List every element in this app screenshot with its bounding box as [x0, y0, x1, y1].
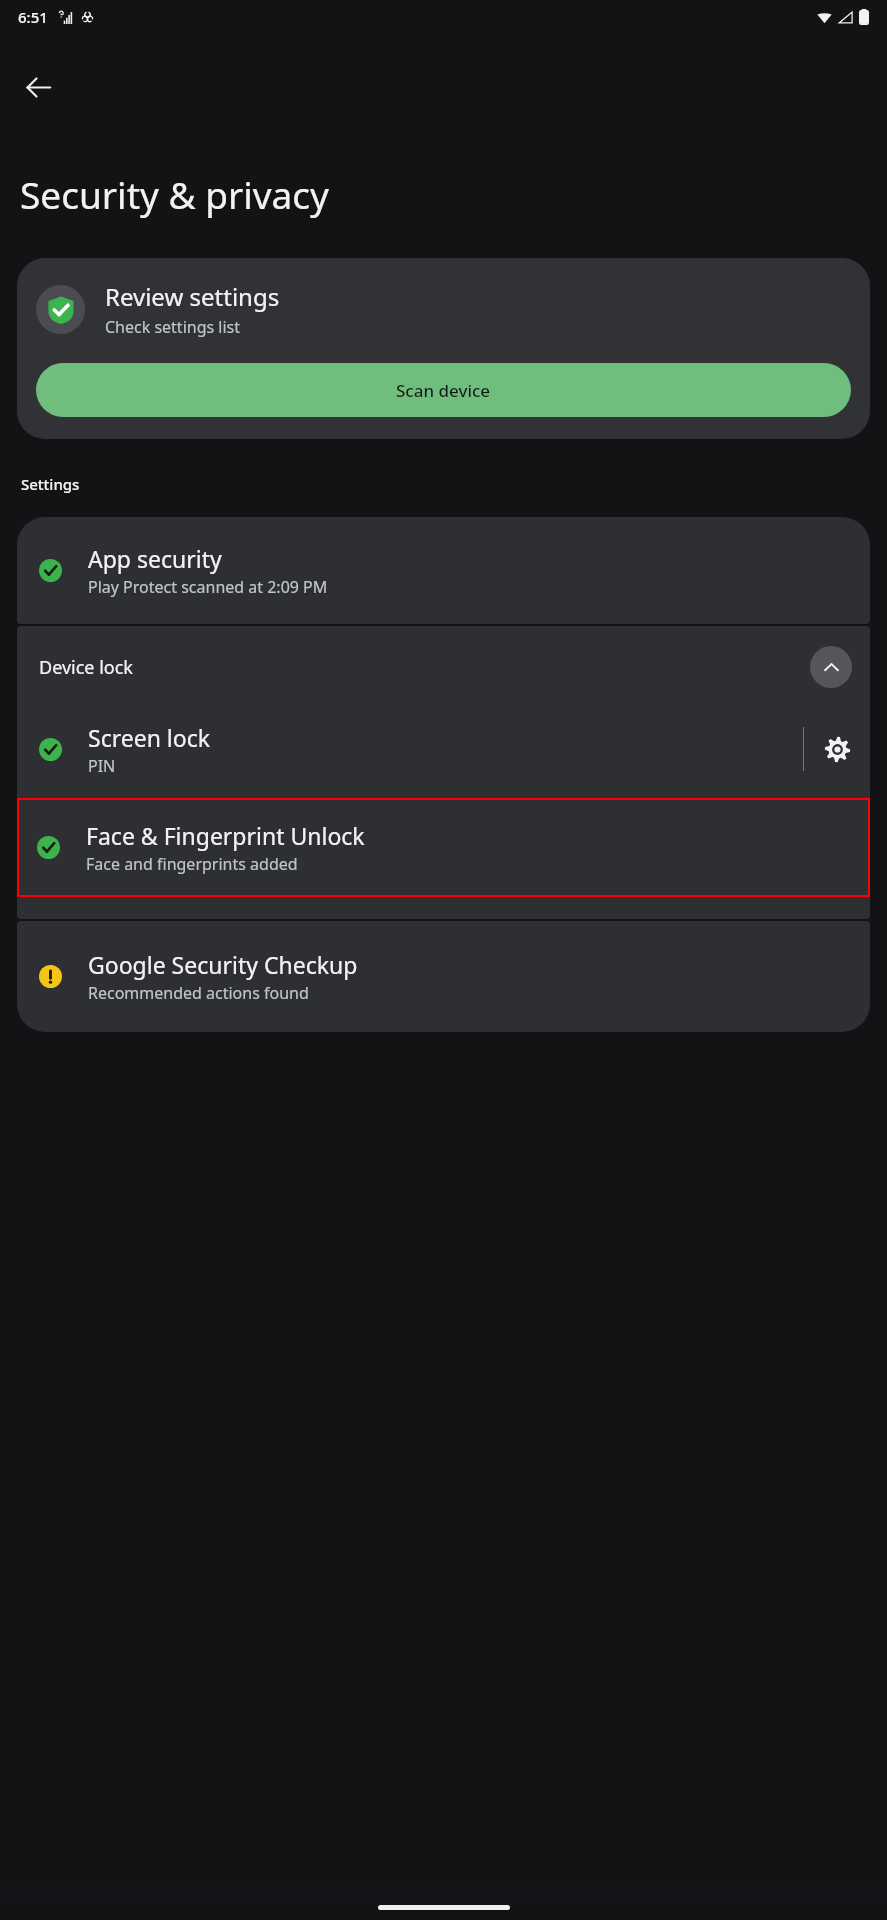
button[interactable]: Scan device: [36, 363, 851, 417]
button[interactable]: Review settings: [17, 258, 870, 439]
staticText: Device lock: [39, 655, 810, 680]
button[interactable]: App security: [17, 517, 870, 624]
staticText: 6:51: [18, 7, 48, 27]
button[interactable]: Screen lock settings: [804, 716, 870, 782]
staticText: Face and fingerprints added: [86, 853, 298, 875]
button[interactable]: Back: [12, 61, 64, 113]
staticText: Recommended actions found: [88, 982, 309, 1004]
staticText: App security: [88, 543, 222, 574]
staticText: Check settings list: [105, 316, 241, 338]
staticText: Face & Fingerprint Unlock: [86, 820, 365, 851]
staticText: Screen lock: [88, 722, 211, 753]
button[interactable]: Device lock: [17, 626, 870, 700]
button[interactable]: Screen lock: [17, 700, 870, 798]
staticText: Security & privacy: [20, 169, 329, 219]
staticText: Google Security Checkup: [88, 949, 358, 980]
staticText: Settings: [21, 474, 80, 494]
staticText: PIN: [88, 755, 116, 777]
staticText: Review settings: [105, 280, 280, 313]
button[interactable]: Collapse Device lock: [810, 646, 852, 688]
button[interactable]: Face & Fingerprint Unlock: [17, 798, 870, 897]
button[interactable]: Google Security Checkup: [17, 921, 870, 1032]
staticText: Scan device: [396, 379, 491, 402]
staticText: Play Protect scanned at 2:09 PM: [88, 576, 328, 598]
